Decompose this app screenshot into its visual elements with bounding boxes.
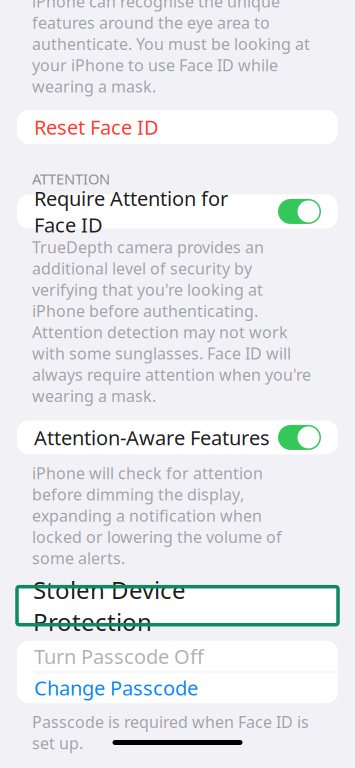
staticText: Passcode is required when Face ID is set… xyxy=(32,711,309,754)
staticText: Attention-Aware Features xyxy=(34,424,270,451)
staticText: Require Attention for Face ID xyxy=(34,185,228,238)
staticText: Face ID is most accurate when it's set u… xyxy=(32,0,313,97)
button[interactable]: Stolen Device Protection xyxy=(17,587,338,625)
button[interactable]: Turn Passcode Off xyxy=(17,641,338,672)
staticText: Change Passcode xyxy=(34,674,198,701)
staticText: ATTENTION xyxy=(32,169,110,188)
staticText: Turn Passcode Off xyxy=(34,643,204,669)
button[interactable]: Reset Face ID xyxy=(17,110,338,144)
staticText: iPhone will check for attention before d… xyxy=(32,462,282,569)
staticText: Reset Face ID xyxy=(34,114,159,140)
staticText: Stolen Device Protection xyxy=(33,574,186,637)
button[interactable]: Require Attention for Face ID xyxy=(17,194,338,228)
button[interactable]: Change Passcode xyxy=(17,672,338,703)
staticText: TrueDepth camera provides an additional … xyxy=(32,236,311,406)
button[interactable]: Attention-Aware Features xyxy=(17,420,338,454)
